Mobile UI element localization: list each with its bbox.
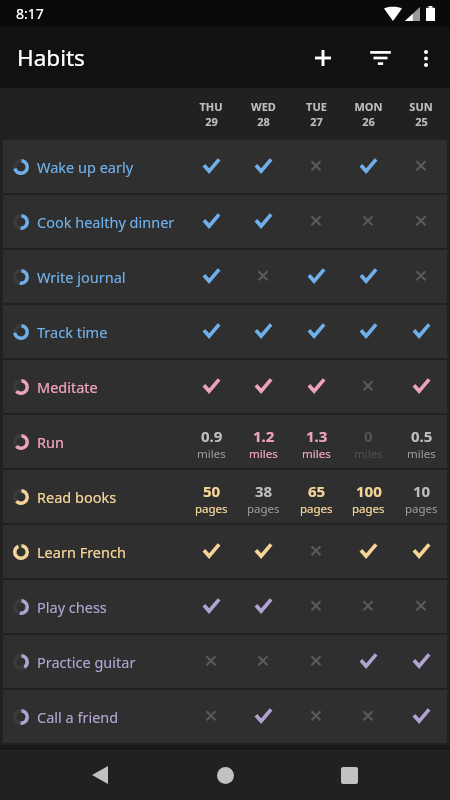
button[interactable] — [238, 580, 288, 633]
button[interactable] — [186, 250, 236, 303]
button[interactable] — [238, 250, 288, 303]
staticText: pages — [247, 501, 280, 517]
button[interactable]: Add habit — [299, 34, 347, 82]
staticText: Track time — [37, 322, 108, 342]
staticText: 100 — [356, 481, 382, 501]
button[interactable] — [343, 690, 393, 743]
staticText: pages — [300, 501, 333, 517]
button[interactable] — [186, 140, 236, 193]
button[interactable] — [343, 635, 393, 688]
staticText: Practice guitar — [37, 652, 136, 672]
button[interactable] — [396, 305, 446, 358]
staticText: miles — [354, 446, 383, 462]
staticText: Wake up early — [37, 157, 134, 177]
button[interactable] — [291, 690, 341, 743]
button[interactable]: Practice guitar — [3, 635, 447, 688]
button[interactable]: 0.9 — [186, 415, 236, 468]
button[interactable] — [343, 580, 393, 633]
button[interactable] — [186, 195, 236, 248]
button[interactable]: Read books — [3, 470, 447, 523]
button[interactable] — [291, 580, 341, 633]
button[interactable] — [396, 525, 446, 578]
button[interactable] — [343, 195, 393, 248]
button[interactable]: 0.5 — [396, 415, 446, 468]
button[interactable]: 0 — [343, 415, 393, 468]
button[interactable] — [238, 140, 288, 193]
button[interactable] — [186, 360, 236, 413]
button[interactable]: Filter — [356, 34, 404, 82]
button[interactable] — [186, 305, 236, 358]
button[interactable] — [186, 690, 236, 743]
staticText: Habits — [17, 42, 85, 73]
staticText: 0.9 — [201, 426, 223, 446]
button[interactable] — [291, 195, 341, 248]
staticText: Learn French — [37, 542, 126, 562]
button[interactable]: Run — [3, 415, 447, 468]
button[interactable] — [291, 250, 341, 303]
staticText: 28 — [257, 114, 270, 129]
button[interactable]: Home — [200, 750, 250, 800]
button[interactable] — [238, 525, 288, 578]
button[interactable] — [396, 140, 446, 193]
button[interactable]: Meditate — [3, 360, 447, 413]
button[interactable] — [291, 305, 341, 358]
button[interactable] — [343, 250, 393, 303]
button[interactable]: Track time — [3, 305, 447, 358]
button[interactable] — [396, 195, 446, 248]
button[interactable] — [396, 635, 446, 688]
button[interactable] — [238, 195, 288, 248]
staticText: SUN — [409, 99, 433, 114]
staticText: WED — [251, 99, 276, 114]
button[interactable] — [238, 635, 288, 688]
button[interactable]: Learn French — [3, 525, 447, 578]
staticText: Play chess — [37, 597, 107, 617]
staticText: 38 — [255, 481, 273, 501]
button[interactable]: 50 — [186, 470, 236, 523]
staticText: Call a friend — [37, 707, 119, 727]
staticText: miles — [302, 446, 331, 462]
button[interactable]: Call a friend — [3, 690, 447, 743]
staticText: 1.3 — [306, 426, 328, 446]
button[interactable] — [186, 635, 236, 688]
button[interactable] — [343, 525, 393, 578]
button[interactable] — [396, 360, 446, 413]
staticText: miles — [407, 446, 436, 462]
button[interactable]: Wake up early — [3, 140, 447, 193]
button[interactable] — [396, 580, 446, 633]
button[interactable] — [238, 305, 288, 358]
button[interactable] — [291, 635, 341, 688]
button[interactable]: 1.3 — [291, 415, 341, 468]
button[interactable]: Write journal — [3, 250, 447, 303]
staticText: 10 — [413, 481, 431, 501]
button[interactable]: 65 — [291, 470, 341, 523]
button[interactable] — [186, 580, 236, 633]
button[interactable]: 100 — [343, 470, 393, 523]
button[interactable]: More options — [402, 34, 450, 82]
button[interactable] — [238, 360, 288, 413]
staticText: 8:17 — [16, 4, 44, 23]
staticText: pages — [195, 501, 228, 517]
staticText: pages — [405, 501, 438, 517]
button[interactable]: Recents — [324, 750, 374, 800]
staticText: 27 — [310, 114, 323, 129]
button[interactable]: 10 — [396, 470, 446, 523]
button[interactable]: Back — [75, 750, 125, 800]
button[interactable] — [396, 690, 446, 743]
button[interactable] — [343, 360, 393, 413]
button[interactable] — [186, 525, 236, 578]
button[interactable]: 38 — [238, 470, 288, 523]
button[interactable] — [343, 140, 393, 193]
button[interactable] — [238, 690, 288, 743]
button[interactable]: Play chess — [3, 580, 447, 633]
staticText: Write journal — [37, 267, 126, 287]
button[interactable] — [291, 360, 341, 413]
button[interactable] — [396, 250, 446, 303]
button[interactable] — [343, 305, 393, 358]
button[interactable]: Cook healthy dinner — [3, 195, 447, 248]
staticText: Read books — [37, 487, 117, 507]
button[interactable] — [291, 140, 341, 193]
staticText: miles — [249, 446, 278, 462]
staticText: Cook healthy dinner — [37, 212, 175, 232]
button[interactable]: 1.2 — [238, 415, 288, 468]
button[interactable] — [291, 525, 341, 578]
